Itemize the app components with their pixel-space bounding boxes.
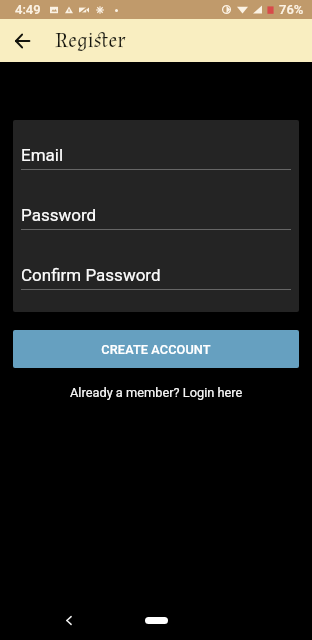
button[interactable]: Back	[8, 27, 36, 55]
button[interactable]: Email	[21, 145, 291, 170]
staticText: Password	[21, 205, 97, 225]
button[interactable]: Confirm Password	[21, 265, 291, 290]
button[interactable]: Already a member? Login here	[60, 382, 253, 403]
staticText: CREATE ACCOUNT	[101, 342, 211, 357]
staticText: Email	[21, 145, 64, 165]
staticText: Already a member? Login here	[70, 385, 243, 400]
button[interactable]: CREATE ACCOUNT	[13, 330, 299, 368]
button[interactable]: Password	[21, 205, 291, 230]
staticText: Confirm Password	[21, 265, 161, 285]
button[interactable]: Home	[145, 617, 168, 624]
staticText: Register	[55, 27, 126, 54]
staticText: 4:49	[15, 2, 41, 17]
staticText: 76%	[279, 2, 304, 17]
button[interactable]: Back	[58, 609, 80, 631]
